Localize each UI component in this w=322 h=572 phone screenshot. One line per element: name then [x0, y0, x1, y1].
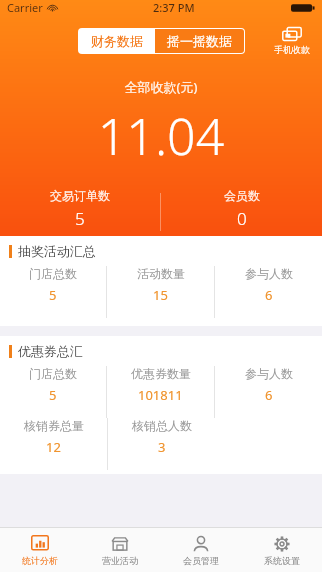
staticText: 财务数据 [91, 33, 143, 49]
staticText: 优惠券数量 [131, 366, 191, 381]
staticText: 优惠券总汇 [18, 343, 83, 359]
staticText: 5 [49, 386, 57, 404]
button[interactable]: 活动数量 [107, 266, 214, 304]
staticText: 手机收款 [274, 44, 310, 55]
staticText: 交易订单数 [50, 188, 110, 203]
button[interactable]: 参与人数 [215, 266, 322, 304]
staticText: 11.04 [0, 102, 322, 170]
button[interactable]: 会员数 [161, 188, 322, 230]
staticText: 统计分析 [22, 555, 58, 566]
staticText: 门店总数 [29, 366, 77, 381]
staticText: 活动数量 [137, 266, 185, 281]
button[interactable]: 优惠券数量 [107, 366, 214, 404]
staticText: 15 [153, 286, 168, 304]
button[interactable]: 核销总人数 [108, 418, 215, 456]
staticText: 抽奖活动汇总 [18, 243, 96, 259]
staticText: 0 [237, 207, 247, 230]
staticText: 全部收款(元) [0, 78, 322, 96]
staticText: 5 [49, 286, 57, 304]
button[interactable]: 统计分析 [0, 535, 80, 566]
staticText: 6 [265, 386, 273, 404]
button[interactable]: 系统设置 [241, 535, 322, 566]
staticText: 系统设置 [264, 555, 300, 566]
button[interactable]: 手机收款 [270, 25, 314, 57]
staticText: 核销总人数 [132, 418, 192, 433]
button[interactable]: 交易订单数 [0, 188, 160, 230]
staticText: 101811 [138, 386, 183, 404]
button[interactable]: 会员管理 [160, 535, 241, 566]
button[interactable]: 营业活动 [80, 535, 160, 566]
staticText: 2:37 PM [153, 0, 195, 15]
staticText: 核销券总量 [24, 418, 84, 433]
staticText: 参与人数 [245, 366, 293, 381]
button[interactable]: 摇一摇数据 [155, 29, 244, 53]
staticText: 参与人数 [245, 266, 293, 281]
staticText: 会员管理 [183, 555, 219, 566]
staticText: 5 [75, 207, 85, 230]
staticText: 会员数 [224, 188, 260, 203]
button[interactable]: 门店总数 [0, 266, 106, 304]
staticText: 6 [265, 286, 273, 304]
staticText: 12 [46, 438, 61, 456]
staticText: Carrier [7, 0, 43, 15]
staticText: 摇一摇数据 [167, 33, 232, 49]
staticText: 门店总数 [29, 266, 77, 281]
button[interactable]: 财务数据 [79, 29, 155, 53]
staticText: 营业活动 [102, 555, 138, 566]
button[interactable]: 参与人数 [215, 366, 322, 404]
button[interactable]: 门店总数 [0, 366, 106, 404]
staticText: 3 [158, 438, 166, 456]
button[interactable]: 核销券总量 [0, 418, 107, 456]
